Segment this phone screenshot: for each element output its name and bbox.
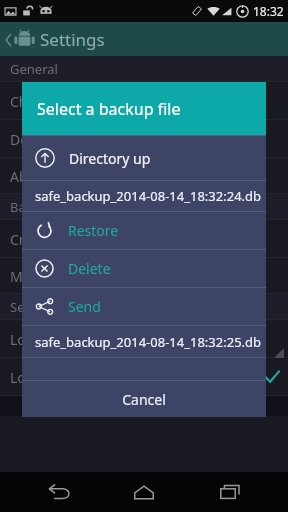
staticText: 18:32 — [253, 3, 284, 19]
button[interactable]: safe_backup_2014-08-14_18:32:24.db — [22, 181, 266, 211]
staticText: Select a backup file — [37, 98, 181, 120]
staticText: Settings — [40, 28, 105, 51]
button[interactable]: Cancel — [22, 381, 266, 417]
button[interactable]: Send — [22, 288, 266, 325]
staticText: Cancel — [122, 390, 166, 409]
staticText: Manage backups — [10, 267, 122, 286]
staticText: safe_backup_2014-08-14_18:32:24.db — [35, 187, 262, 205]
staticText: safe_backup_2014-08-14_18:32:25.db — [35, 333, 262, 351]
staticText: Default view — [10, 130, 92, 149]
button[interactable]: Directory up — [22, 136, 266, 180]
button[interactable]: Navigate up — [0, 22, 40, 56]
staticText: About — [10, 167, 50, 186]
button[interactable]: Recent apps — [203, 472, 257, 512]
staticText: Security — [10, 298, 59, 316]
staticText: Restore — [68, 221, 119, 240]
staticText: Create backup — [10, 230, 105, 249]
staticText: Backup — [10, 198, 55, 216]
button[interactable]: Back — [32, 472, 86, 512]
staticText: General — [10, 60, 58, 78]
button[interactable]: Delete — [22, 250, 266, 287]
staticText: Directory up — [69, 149, 151, 168]
staticText: Check for updates — [10, 92, 130, 111]
staticText: Delete — [68, 259, 111, 278]
button[interactable]: safe_backup_2014-08-14_18:32:25.db — [22, 326, 266, 357]
staticText: Send — [68, 297, 101, 316]
staticText: Lock timeout — [10, 330, 96, 349]
button[interactable]: Home — [117, 472, 171, 512]
staticText: Lock on exit — [10, 368, 89, 387]
button[interactable]: Restore — [22, 212, 266, 249]
